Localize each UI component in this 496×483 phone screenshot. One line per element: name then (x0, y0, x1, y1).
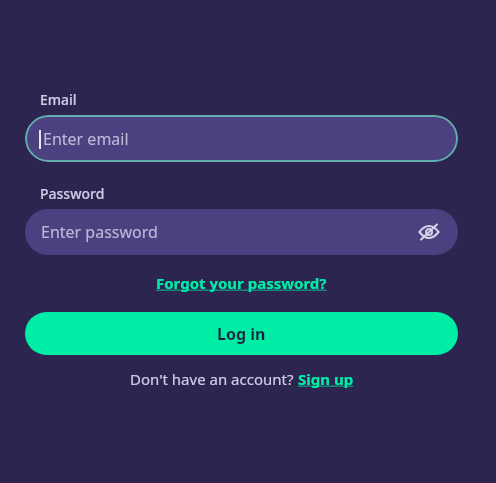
button[interactable]: Enter password (25, 209, 458, 255)
staticText: Enter password (41, 221, 158, 243)
button[interactable]: Enter email (25, 115, 458, 162)
staticText: Forgot your password? (156, 273, 327, 293)
staticText: Password (40, 184, 105, 203)
staticText: Enter email (43, 128, 129, 150)
staticText: Don't have an account? (130, 369, 298, 389)
staticText: Email (40, 90, 77, 109)
button[interactable]: Show password (414, 217, 444, 247)
staticText: Sign up (298, 369, 354, 389)
staticText: Log in (217, 323, 266, 345)
button[interactable]: Sign up (298, 369, 354, 389)
button[interactable]: Forgot your password? (152, 271, 331, 295)
button[interactable]: Log in (25, 312, 458, 355)
